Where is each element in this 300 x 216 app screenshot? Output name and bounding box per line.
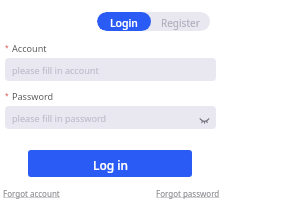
staticText: Forgot account — [3, 188, 60, 199]
button[interactable]: please fill in password — [5, 106, 216, 129]
staticText: Register — [161, 16, 200, 30]
staticText: Account — [12, 42, 47, 54]
staticText: * — [5, 91, 9, 100]
staticText: Password — [12, 90, 54, 102]
button[interactable]: please fill in account — [5, 58, 216, 81]
staticText: * — [5, 43, 9, 52]
button[interactable]: Forgot password — [153, 184, 223, 203]
button[interactable]: Login — [97, 12, 151, 31]
staticText: Forgot password — [156, 188, 220, 199]
button[interactable]: Log in — [28, 150, 192, 177]
staticText: please fill in password — [12, 112, 107, 124]
button[interactable]: Register — [151, 12, 210, 31]
staticText: Log in — [93, 157, 129, 173]
staticText: Login — [110, 16, 138, 30]
staticText: please fill in account — [12, 64, 99, 76]
button[interactable]: Forgot account — [0, 184, 63, 203]
button[interactable]: Show password — [196, 110, 212, 126]
